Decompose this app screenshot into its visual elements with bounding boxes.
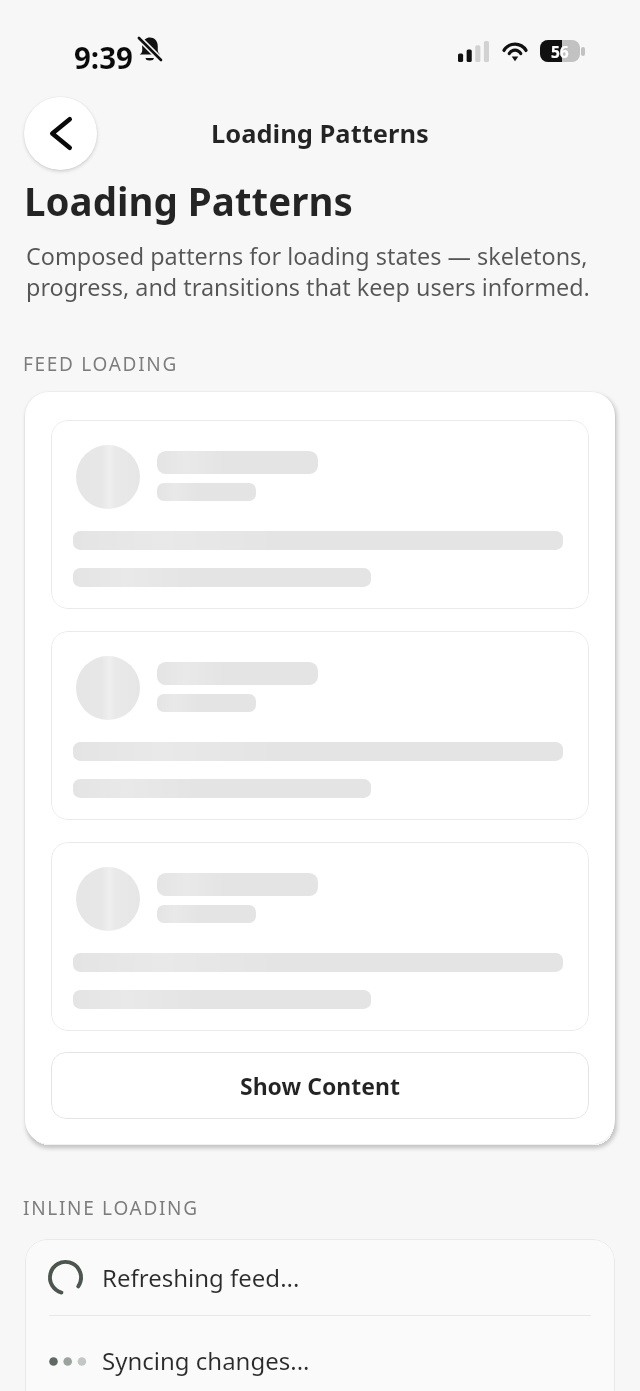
button[interactable]: Show Content <box>51 1052 589 1119</box>
staticText: Composed patterns for loading states — s… <box>26 240 590 303</box>
staticText: Loading Patterns <box>211 116 429 151</box>
staticText: Syncing changes... <box>102 1344 310 1377</box>
staticText: Show Content <box>240 1070 400 1101</box>
staticText: Refreshing feed... <box>102 1261 300 1294</box>
staticText: FEED LOADING <box>23 351 178 377</box>
button[interactable]: Refreshing feed... <box>25 1239 615 1315</box>
staticText: 9:39 <box>74 37 133 77</box>
staticText: Loading Patterns <box>24 175 353 227</box>
staticText: 56 <box>551 41 569 62</box>
button[interactable]: Back <box>24 97 97 170</box>
button[interactable]: Syncing changes... <box>25 1316 615 1391</box>
staticText: INLINE LOADING <box>23 1195 199 1221</box>
